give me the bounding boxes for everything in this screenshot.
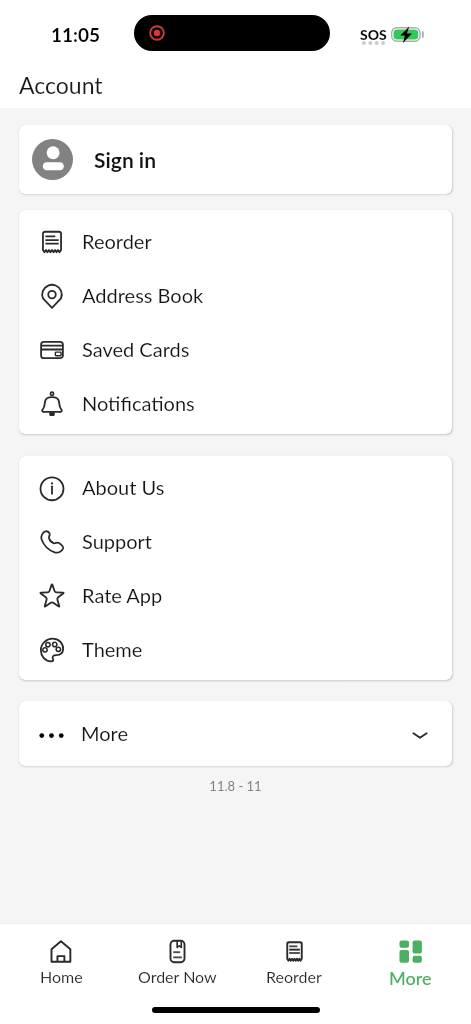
staticText: Rate App [82, 583, 163, 607]
button[interactable]: Theme [19, 622, 452, 676]
button[interactable]: Saved Cards [19, 322, 452, 376]
staticText: About Us [82, 475, 165, 499]
staticText: More [81, 721, 129, 745]
button[interactable]: Address Book [19, 268, 452, 322]
staticText: Notifications [82, 391, 195, 415]
button[interactable]: Reorder [239, 940, 349, 986]
button[interactable]: Support [19, 514, 452, 568]
button[interactable]: Rate App [19, 568, 452, 622]
staticText: Support [82, 529, 153, 553]
staticText: Reorder [82, 229, 152, 253]
staticText: Address Book [82, 283, 204, 307]
button[interactable]: Reorder [19, 214, 452, 268]
button[interactable]: Home [6, 940, 116, 986]
staticText: Home [40, 967, 83, 986]
staticText: Account [19, 71, 103, 99]
staticText: More [389, 967, 432, 989]
staticText: 11.8 - 11 [0, 778, 471, 794]
button[interactable]: Sign in [19, 125, 452, 194]
staticText: Reorder [266, 967, 322, 986]
button[interactable]: Order Now [122, 940, 232, 986]
button[interactable]: Notifications [19, 376, 452, 430]
staticText: SOS [360, 26, 387, 43]
staticText: Sign in [94, 147, 157, 172]
button[interactable]: About Us [19, 460, 452, 514]
staticText: 11:05 [51, 23, 100, 46]
staticText: Theme [82, 637, 143, 661]
button[interactable]: More [355, 940, 465, 989]
button[interactable]: More [19, 701, 452, 766]
staticText: Order Now [138, 967, 217, 986]
staticText: Saved Cards [82, 337, 190, 361]
